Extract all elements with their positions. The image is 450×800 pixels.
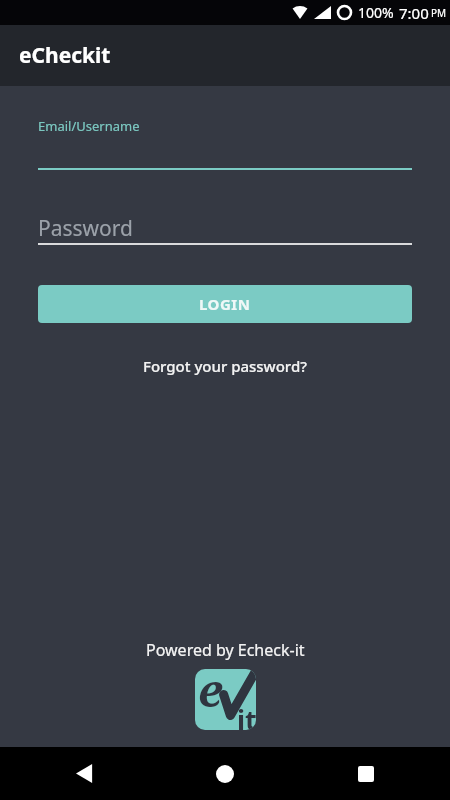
staticText: Powered by Echeck-it <box>146 639 305 661</box>
staticText: 7:00 <box>399 3 429 23</box>
button[interactable] <box>295 747 436 800</box>
button[interactable]: Forgot your password? <box>141 354 309 378</box>
staticText: PM <box>431 6 447 20</box>
staticText: Email/Username <box>38 117 140 135</box>
staticText: Password <box>38 214 133 243</box>
button[interactable]: LOGIN <box>38 285 412 323</box>
staticText: Forgot your password? <box>143 356 307 376</box>
button[interactable]: Password <box>38 214 412 245</box>
staticText: 100% <box>358 3 394 22</box>
button[interactable] <box>154 747 295 800</box>
button[interactable]: Email/Username <box>38 117 412 170</box>
staticText: e <box>198 669 223 719</box>
staticText: eCheckit <box>19 41 111 70</box>
button[interactable] <box>14 747 154 800</box>
staticText: LOGIN <box>199 294 251 314</box>
button[interactable]: e <box>195 669 256 730</box>
staticText: it <box>237 701 256 730</box>
